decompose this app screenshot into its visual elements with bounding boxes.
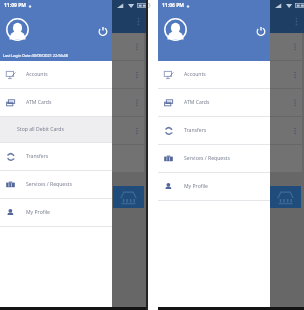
button[interactable]: Accounts: [0, 61, 112, 88]
staticText: Last Login Date:30/09/2021 22:56:48: [3, 53, 68, 58]
button[interactable]: More options: [136, 17, 141, 26]
staticText: Accounts: [26, 71, 48, 78]
button[interactable]: [1, 61, 144, 88]
staticText: Stop all Debit Cards: [17, 126, 64, 133]
button[interactable]: [1, 145, 144, 172]
staticText: Transfers: [26, 153, 49, 160]
button[interactable]: [159, 117, 302, 144]
staticText: 11:06 PM: [162, 2, 184, 9]
button[interactable]: Stop all Debit Cards: [0, 117, 112, 142]
staticText: My Profile: [26, 209, 50, 216]
staticText: Accounts: [184, 71, 206, 78]
button[interactable]: Bank: [270, 186, 301, 208]
button[interactable]: [1, 89, 144, 116]
button[interactable]: [1, 117, 144, 144]
button[interactable]: My Profile: [158, 173, 270, 200]
button[interactable]: [159, 89, 302, 116]
staticText: My Profile: [184, 183, 208, 190]
button[interactable]: Accounts: [158, 61, 270, 88]
button[interactable]: ATM Cards: [158, 89, 270, 116]
button[interactable]: Services / Requests: [158, 145, 270, 172]
button[interactable]: Bank: [113, 186, 144, 208]
staticText: ATM Cards: [26, 99, 52, 106]
staticText: Services / Requests: [26, 181, 72, 188]
staticText: Services / Requests: [184, 155, 230, 162]
staticText: ATM Cards: [184, 99, 210, 106]
button[interactable]: [159, 145, 302, 172]
button[interactable]: Transfers: [0, 143, 112, 170]
button[interactable]: Transfers: [158, 117, 270, 144]
button[interactable]: Logout: [98, 26, 108, 36]
button[interactable]: Services / Requests: [0, 171, 112, 198]
button[interactable]: [159, 61, 302, 88]
button[interactable]: Logout: [256, 26, 266, 36]
button[interactable]: More options: [294, 17, 299, 26]
button[interactable]: [159, 33, 302, 60]
staticText: 11:09 PM: [4, 2, 26, 9]
button[interactable]: ATM Cards: [0, 89, 112, 116]
button[interactable]: [1, 33, 144, 60]
staticText: Transfers: [184, 127, 207, 134]
button[interactable]: My Profile: [0, 199, 112, 226]
